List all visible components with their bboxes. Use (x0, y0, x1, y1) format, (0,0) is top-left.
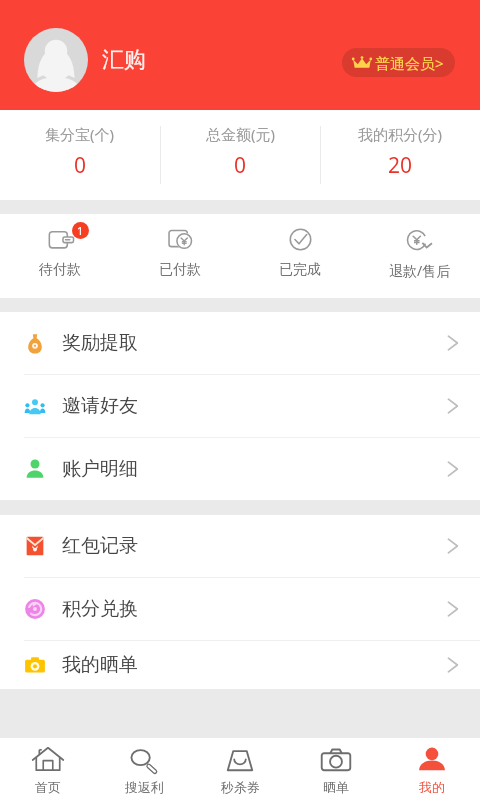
staticText: 退款/售后 (389, 261, 451, 280)
button[interactable]: 邀请好友 (0, 375, 480, 437)
staticText: 邀请好友 (62, 394, 138, 418)
button[interactable]: 普通会员> (342, 48, 455, 77)
staticText: 汇购 (102, 46, 146, 74)
staticText: 已完成 (279, 261, 321, 279)
staticText: 奖励提取 (62, 331, 138, 355)
staticText: 红包记录 (62, 534, 138, 558)
staticText: 积分兑换 (62, 597, 138, 621)
button[interactable]: 搜返利 (96, 738, 192, 800)
button[interactable]: 秒杀券 (192, 738, 288, 800)
button[interactable]: 总金额(元) (161, 110, 320, 200)
button[interactable]: 我的积分(分) (321, 110, 480, 200)
button[interactable]: 已完成 (240, 214, 360, 298)
staticText: 1 (77, 223, 84, 238)
button[interactable]: 我的晒单 (0, 641, 480, 689)
button[interactable]: 退款/售后 (360, 214, 480, 298)
button[interactable]: 集分宝(个) (0, 110, 160, 200)
staticText: 秒杀券 (221, 779, 260, 795)
button[interactable]: 晒单 (288, 738, 384, 800)
staticText: 0 (234, 151, 247, 180)
button[interactable]: 奖励提取 (0, 312, 480, 374)
staticText: 集分宝(个) (45, 124, 115, 144)
staticText: 已付款 (159, 261, 201, 279)
staticText: 我的积分(分) (358, 124, 443, 144)
button[interactable]: 我的 (384, 738, 480, 800)
staticText: 普通会员> (375, 53, 444, 73)
staticText: 0 (74, 151, 87, 180)
staticText: 晒单 (323, 779, 349, 795)
staticText: 我的晒单 (62, 653, 138, 677)
button[interactable]: Avatar (24, 28, 88, 92)
staticText: 账户明细 (62, 457, 138, 481)
staticText: 首页 (35, 779, 61, 795)
staticText: 搜返利 (125, 779, 164, 795)
staticText: 20 (388, 151, 413, 180)
button[interactable]: 已付款 (120, 214, 240, 298)
button[interactable]: 首页 (0, 738, 96, 800)
staticText: 待付款 (39, 261, 81, 279)
staticText: 总金额(元) (206, 124, 276, 144)
staticText: 我的 (419, 779, 445, 795)
button[interactable]: 红包记录 (0, 515, 480, 577)
button[interactable]: 账户明细 (0, 438, 480, 500)
button[interactable]: 积分兑换 (0, 578, 480, 640)
button[interactable]: 1 (0, 214, 120, 298)
